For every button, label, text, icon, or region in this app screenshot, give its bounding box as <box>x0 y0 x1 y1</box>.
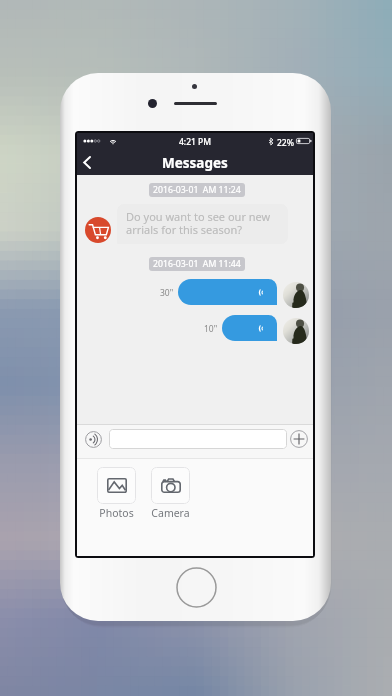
staticText: Do you want to see our new arrials for t… <box>126 209 271 238</box>
button[interactable]: Play voice message <box>178 279 277 305</box>
staticText: 4:21 PM <box>179 136 212 148</box>
button[interactable]: Back <box>77 150 97 175</box>
staticText: 10" <box>204 323 218 335</box>
staticText: 22% <box>277 137 294 149</box>
button[interactable]: Voice input <box>85 431 102 448</box>
button[interactable]: Add attachment <box>290 430 308 448</box>
button[interactable]: Home <box>176 567 217 608</box>
staticText: Camera <box>151 506 190 520</box>
staticText: 2016-03-01 AM 11:44 <box>153 258 241 270</box>
staticText: Photos <box>99 506 134 520</box>
button[interactable]: Contact avatar <box>283 318 309 344</box>
button[interactable] <box>109 429 287 449</box>
button[interactable]: Camera <box>151 467 190 520</box>
button[interactable]: Photos <box>97 467 136 520</box>
button[interactable]: Contact avatar <box>283 282 309 308</box>
staticText: 30" <box>160 287 174 299</box>
button[interactable]: Play voice message <box>222 315 277 341</box>
staticText: Messages <box>162 154 228 172</box>
button[interactable]: Shop avatar <box>85 217 111 243</box>
staticText: 2016-03-01 AM 11:24 <box>153 184 241 196</box>
button[interactable]: Do you want to see our new arrials for t… <box>117 204 288 244</box>
